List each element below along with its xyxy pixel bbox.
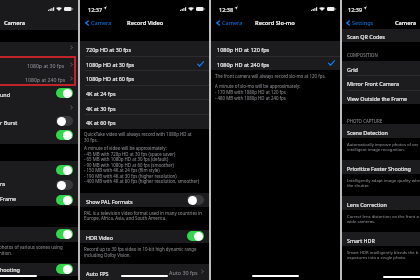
staticText: PAL is a television video format used in… xyxy=(84,210,203,216)
staticText: 4K at 24 fps xyxy=(86,90,116,97)
staticText: View Outside the Frame xyxy=(347,95,408,102)
staticText: including Dolby Vision. xyxy=(84,252,131,258)
staticText: - 190 MB with 4K at 30 fps (higher resol… xyxy=(84,173,177,179)
staticText: r Burst xyxy=(0,119,18,126)
button[interactable] xyxy=(0,263,78,276)
staticText: intelligent image recognition. xyxy=(347,147,405,153)
staticText: Europe, Africa, Asia, and South America. xyxy=(84,215,167,221)
staticText: Mirror Front Camera xyxy=(347,80,400,87)
button[interactable] xyxy=(80,41,209,56)
staticText: Camera xyxy=(91,19,112,27)
staticText: Record Slo-mo xyxy=(255,19,295,27)
staticText: Camera xyxy=(395,19,417,27)
staticText: ra xyxy=(0,180,6,187)
button[interactable] xyxy=(80,193,209,207)
staticText: Smart HDR xyxy=(347,237,375,244)
button[interactable]: Camera xyxy=(84,19,112,27)
staticText: - 45 MB with 720p HD at 30 fps (space sa… xyxy=(84,151,176,157)
staticText: The front camera will always record slo-… xyxy=(215,73,326,79)
button[interactable]: Off xyxy=(56,180,73,190)
staticText: Auto FPS xyxy=(86,270,109,277)
staticText: 1080p at 240 fps xyxy=(25,76,66,83)
staticText: Camera xyxy=(222,19,243,27)
staticText: 1080p HD at 120 fps xyxy=(217,46,270,53)
button[interactable] xyxy=(80,264,209,280)
staticText: - 90 MB with 1080p HD at 60 fps (smoothe… xyxy=(84,162,174,168)
staticText: HDR Video xyxy=(86,234,113,241)
staticText: - 150 MB with 4K at 24 fps (film style) xyxy=(84,167,160,173)
staticText: - 480 MB with 1080p HD at 240 fps xyxy=(215,95,286,101)
button[interactable] xyxy=(342,29,420,42)
staticText: Prioritize Faster Shooting xyxy=(347,165,411,172)
button[interactable]: Camera xyxy=(215,19,243,27)
staticText: 12:39 xyxy=(348,6,363,13)
button[interactable] xyxy=(80,99,209,114)
staticText: Scene Detection xyxy=(347,129,388,136)
button[interactable]: On xyxy=(56,264,73,274)
button[interactable] xyxy=(0,56,78,86)
button[interactable] xyxy=(342,61,420,75)
button[interactable]: On xyxy=(56,229,73,239)
staticText: Record up to 30 fps video in 10-bit high… xyxy=(84,246,197,252)
button[interactable]: On xyxy=(56,195,73,205)
staticText: Grid xyxy=(347,66,358,73)
button[interactable] xyxy=(342,75,420,89)
staticText: photos of various scenes using xyxy=(0,244,63,250)
button[interactable] xyxy=(342,232,420,246)
button[interactable] xyxy=(342,196,420,210)
staticText: Camera xyxy=(4,19,26,27)
button[interactable] xyxy=(80,56,209,71)
staticText: - 170 MB with 1080p HD at 120 fps xyxy=(215,89,286,95)
staticText: Frame xyxy=(0,195,17,202)
staticText: nition. xyxy=(0,250,13,256)
staticText: exposures into a single photo. xyxy=(347,255,407,261)
button[interactable] xyxy=(80,85,209,100)
staticText: A minute of slo-mo will be approximately… xyxy=(215,83,301,89)
staticText: Automatically improve photos of var xyxy=(347,142,419,148)
staticText: Correct lens distortion on the front a xyxy=(347,214,419,220)
staticText: Settings xyxy=(352,19,374,27)
staticText: wide cameras. xyxy=(347,219,376,225)
staticText: hooting xyxy=(0,266,20,273)
staticText: the shutter. xyxy=(347,183,370,189)
staticText: Auto 30 fps xyxy=(169,269,198,276)
staticText: Scan QR Codes xyxy=(347,33,385,40)
button[interactable] xyxy=(211,41,340,56)
staticText: - 65 MB with 1080p HD at 30 fps (default… xyxy=(84,156,169,162)
staticText: 12:37 xyxy=(88,6,103,13)
staticText: 1080p HD at 240 fps xyxy=(217,61,270,68)
staticText: Smart HDR intelligently blends the b xyxy=(347,250,419,256)
staticText: und xyxy=(0,91,10,98)
staticText: Lens Correction xyxy=(347,201,387,208)
staticText: Intelligently adapt image quality whe xyxy=(347,178,420,184)
staticText: 1080p HD at 30 fps xyxy=(86,61,135,68)
staticText: 4K at 30 fps xyxy=(86,105,116,112)
staticText: A minute of video will be approximately: xyxy=(84,145,167,151)
button[interactable] xyxy=(342,160,420,174)
staticText: Show PAL Formats xyxy=(86,198,133,205)
button[interactable] xyxy=(80,70,209,85)
staticText: - 400 MB with 4K at 60 fps (higher resol… xyxy=(84,178,200,184)
staticText: 1080p HD at 60 fps xyxy=(86,75,135,82)
staticText: QuickTake video will always record with … xyxy=(84,131,192,137)
staticText: Record Video xyxy=(127,19,164,27)
staticText: 1080p at 30 fps xyxy=(27,62,65,69)
button[interactable]: On xyxy=(56,130,73,140)
button[interactable] xyxy=(80,114,209,129)
button[interactable]: Off xyxy=(56,116,73,126)
staticText: 4K at 60 fps xyxy=(86,119,116,126)
staticText: 30 fps. xyxy=(84,137,98,143)
staticText: PHOTO CAPTURE xyxy=(347,118,383,124)
button[interactable]: Settings xyxy=(345,19,374,27)
button[interactable]: On xyxy=(187,231,204,241)
button[interactable] xyxy=(211,56,340,71)
button[interactable]: Off xyxy=(187,195,204,205)
button[interactable] xyxy=(342,124,420,138)
button[interactable]: On xyxy=(56,165,73,175)
button[interactable] xyxy=(80,230,209,243)
button[interactable] xyxy=(342,90,420,104)
staticText: 720p HD at 30 fps xyxy=(86,46,131,53)
staticText: 12:38 xyxy=(219,6,234,13)
staticText: COMPOSITION xyxy=(347,52,378,58)
button[interactable]: On xyxy=(56,88,73,98)
